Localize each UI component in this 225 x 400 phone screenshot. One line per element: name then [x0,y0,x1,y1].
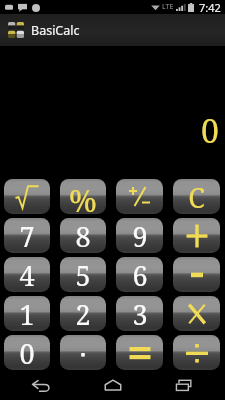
button[interactable]: 2 [60,296,106,331]
staticText: % [69,179,97,214]
staticText: 6 [132,257,148,292]
staticText: LTE [162,2,174,12]
button[interactable]: 3 [116,296,163,331]
button[interactable]: 7 [4,218,50,253]
button[interactable]: BasiCalc [0,14,225,46]
staticText: 1 [19,296,35,331]
button[interactable]: Equals [116,335,163,370]
button[interactable]: Plus [173,218,220,253]
staticText: 8 [75,218,91,253]
staticText: BasiCalc [31,22,80,39]
button[interactable]: % [60,179,106,214]
button[interactable]: 9 [116,218,163,253]
staticText: 0 [201,109,219,153]
button[interactable]: 4 [4,257,50,292]
button[interactable]: Multiply [173,296,220,331]
button[interactable]: Back [11,370,71,400]
button[interactable]: Minus [173,257,220,292]
button[interactable]: 8 [60,218,106,253]
button[interactable]: 0 [4,335,50,370]
staticText: 9 [132,218,148,253]
staticText: 7:42 [199,0,221,14]
button[interactable]: 5 [60,257,106,292]
button[interactable]: 6 [116,257,163,292]
button[interactable]: Square root [4,179,50,214]
staticText: 0 [19,335,35,370]
staticText: 2 [75,296,91,331]
button[interactable]: Home [83,370,143,400]
button[interactable]: Divide [173,335,220,370]
staticText: 7 [19,218,35,253]
staticText: 5 [75,257,91,292]
button[interactable]: 1 [4,296,50,331]
staticText: 4 [19,257,35,292]
staticText: 3 [132,296,148,331]
button[interactable]: Recent apps [154,370,214,400]
button[interactable]: Decimal point [60,335,106,370]
staticText: C [188,179,205,214]
button[interactable]: Plus minus [116,179,163,214]
button[interactable]: C [173,179,220,214]
